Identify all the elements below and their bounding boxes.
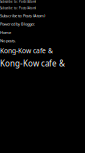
- staticText: No posts.: [0, 38, 16, 43]
- staticText: Subscribe to: Posts (Atom): [0, 6, 36, 10]
- staticText: Kong-Kow cafe &: [0, 46, 53, 55]
- staticText: Kong-Kow cafe &: [0, 58, 65, 69]
- staticText: Powered by Blogger.: [0, 21, 35, 27]
- staticText: Subscribe to: Posts (Atom): [0, 13, 45, 18]
- staticText: Subscribe to: Posts (Atom): [0, 0, 36, 3]
- staticText: Home: [0, 30, 11, 35]
